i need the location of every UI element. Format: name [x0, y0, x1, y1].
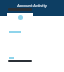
staticText: Account Activity	[17, 3, 47, 8]
